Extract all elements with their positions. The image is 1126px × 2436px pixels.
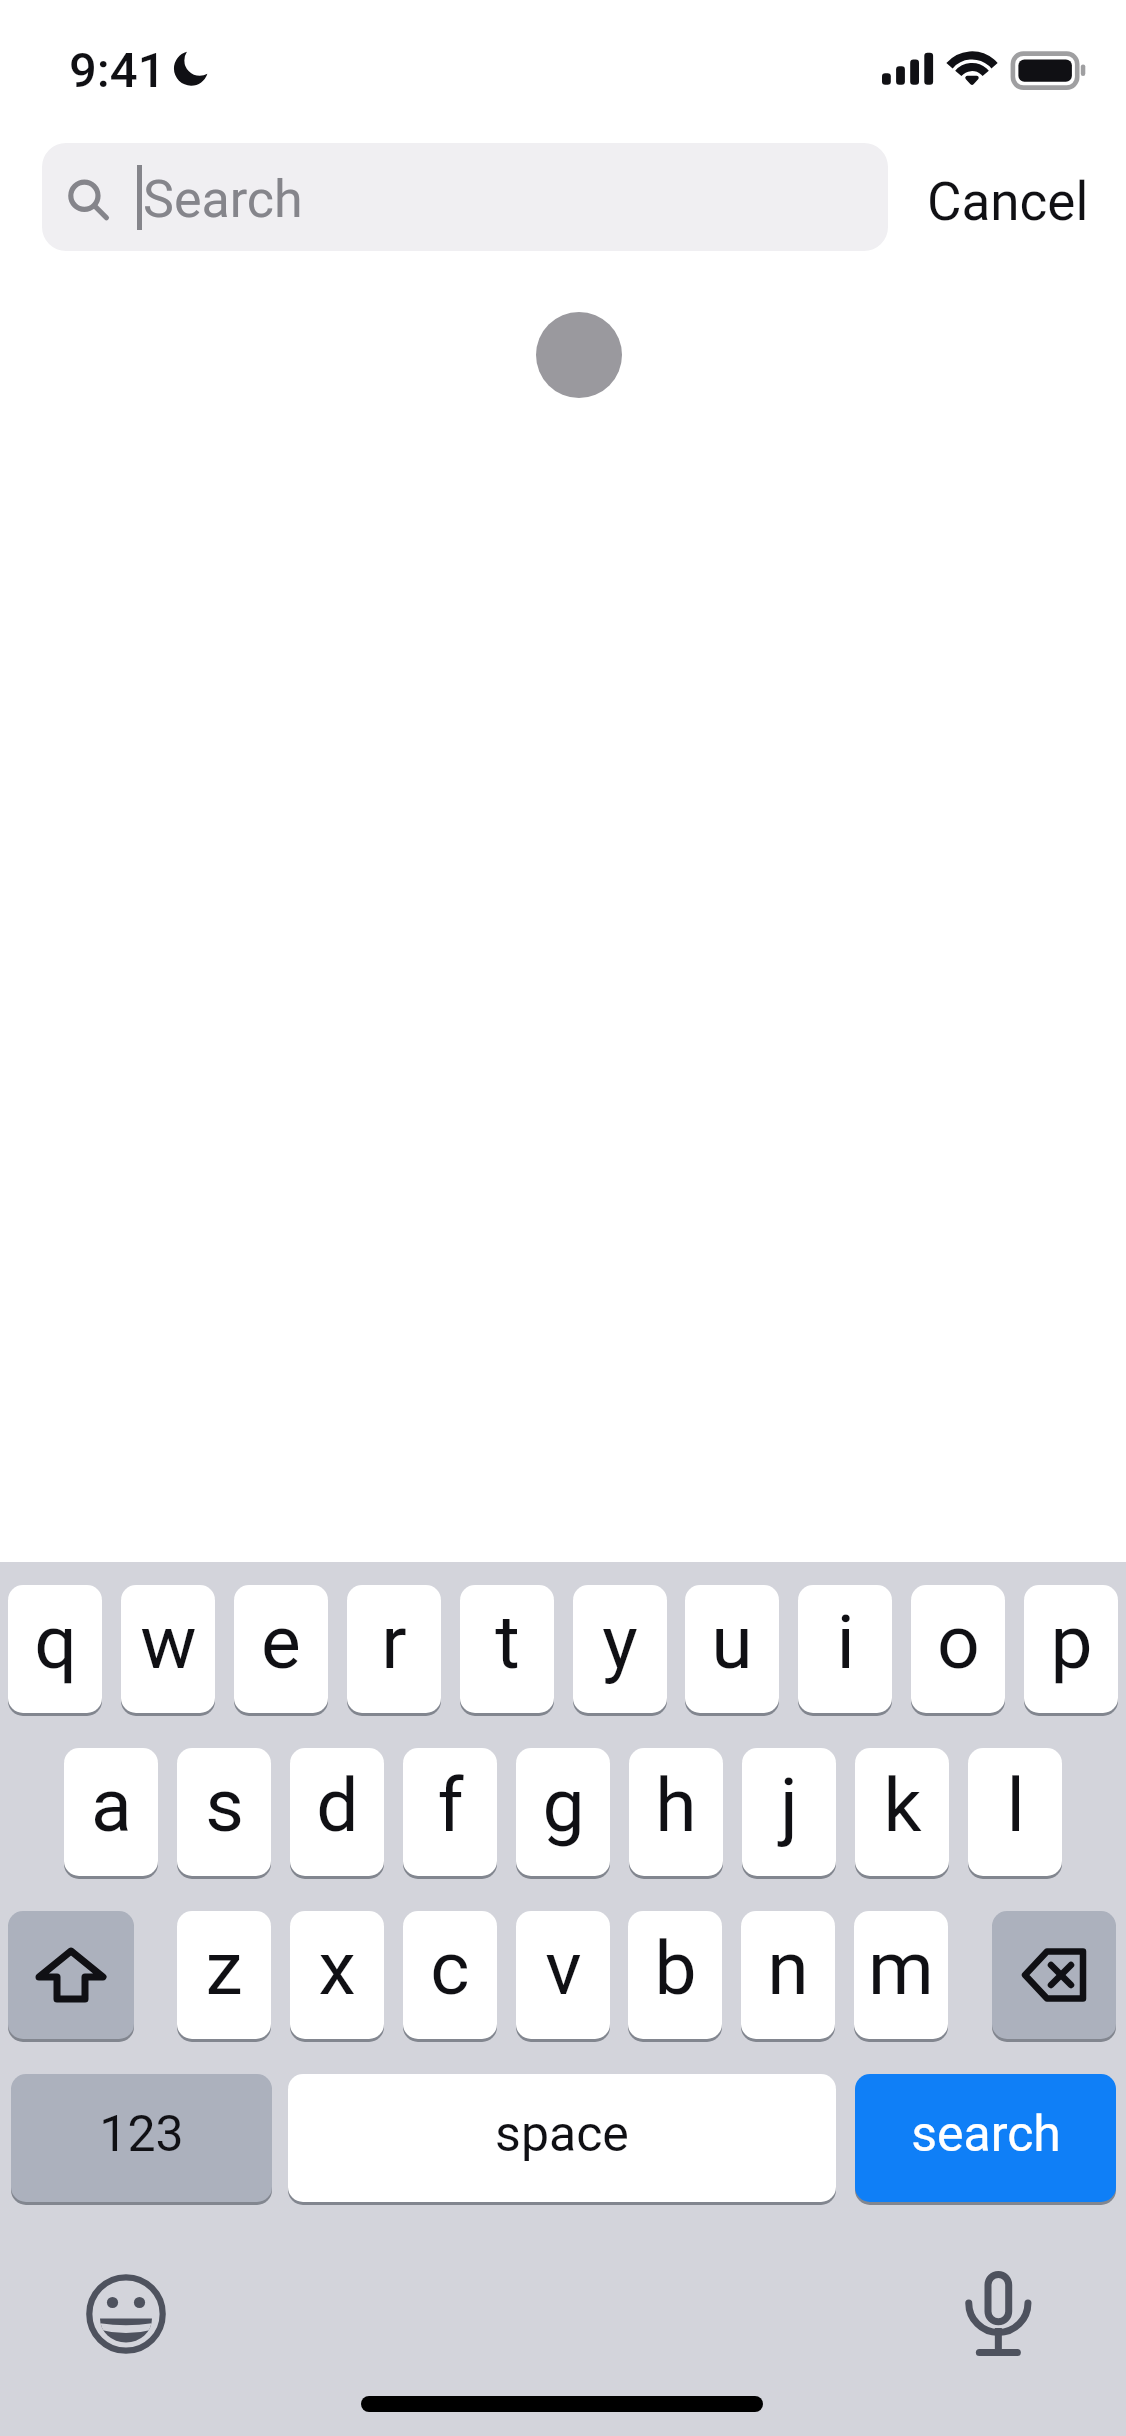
button[interactable]: t: [460, 1585, 554, 1713]
button[interactable]: z: [177, 1911, 271, 2039]
staticText: f: [437, 1761, 464, 1849]
staticText: o: [937, 1598, 980, 1686]
staticText: m: [868, 1924, 934, 2012]
staticText: v: [545, 1924, 582, 2012]
button[interactable]: x: [290, 1911, 384, 2039]
staticText: a: [91, 1761, 132, 1849]
button[interactable]: d: [290, 1748, 384, 1876]
button[interactable]: k: [855, 1748, 949, 1876]
button[interactable]: Shift: [8, 1911, 134, 2039]
staticText: search: [911, 2105, 1061, 2164]
button[interactable]: u: [685, 1585, 779, 1713]
button[interactable]: b: [628, 1911, 722, 2039]
button[interactable]: e: [234, 1585, 328, 1713]
staticText: k: [883, 1761, 922, 1849]
staticText: w: [140, 1598, 197, 1686]
button[interactable]: Dictation: [962, 2268, 1034, 2360]
button[interactable]: r: [347, 1585, 441, 1713]
staticText: d: [316, 1761, 359, 1849]
button[interactable]: h: [629, 1748, 723, 1876]
button[interactable]: a: [64, 1748, 158, 1876]
button[interactable]: Cancel: [927, 162, 1111, 242]
staticText: g: [542, 1761, 585, 1849]
staticText: space: [495, 2105, 629, 2164]
button[interactable]: p: [1024, 1585, 1118, 1713]
button[interactable]: c: [403, 1911, 497, 2039]
button[interactable]: v: [516, 1911, 610, 2039]
button[interactable]: s: [177, 1748, 271, 1876]
staticText: t: [495, 1598, 520, 1686]
staticText: x: [318, 1924, 356, 2012]
staticText: r: [381, 1598, 407, 1686]
staticText: p: [1050, 1598, 1093, 1686]
staticText: q: [34, 1598, 77, 1686]
staticText: u: [711, 1598, 753, 1686]
button[interactable]: i: [798, 1585, 892, 1713]
button[interactable]: j: [742, 1748, 836, 1876]
staticText: 123: [99, 2105, 184, 2164]
staticText: i: [836, 1598, 855, 1686]
button[interactable]: f: [403, 1748, 497, 1876]
staticText: s: [205, 1761, 244, 1849]
button[interactable]: q: [8, 1585, 102, 1713]
button[interactable]: w: [121, 1585, 215, 1713]
staticText: e: [261, 1598, 301, 1686]
button[interactable]: Emoji keyboard: [84, 2272, 168, 2356]
staticText: y: [602, 1598, 638, 1686]
button[interactable]: l: [968, 1748, 1062, 1876]
staticText: h: [655, 1761, 697, 1849]
button[interactable]: g: [516, 1748, 610, 1876]
staticText: z: [205, 1924, 243, 2012]
button[interactable]: Search field: [42, 143, 888, 251]
staticText: 9:41: [69, 42, 166, 99]
staticText: l: [1006, 1761, 1025, 1849]
button[interactable]: Backspace: [992, 1911, 1116, 2039]
staticText: Cancel: [927, 171, 1089, 233]
staticText: c: [430, 1924, 470, 2012]
button[interactable]: y: [573, 1585, 667, 1713]
button[interactable]: o: [911, 1585, 1005, 1713]
button[interactable]: m: [854, 1911, 948, 2039]
button[interactable]: search: [855, 2074, 1116, 2202]
staticText: n: [767, 1924, 809, 2012]
staticText: Search: [143, 169, 303, 230]
button[interactable]: space: [288, 2074, 836, 2202]
staticText: b: [654, 1924, 697, 2012]
button[interactable]: 123: [11, 2074, 272, 2202]
staticText: j: [780, 1761, 798, 1849]
button[interactable]: n: [741, 1911, 835, 2039]
